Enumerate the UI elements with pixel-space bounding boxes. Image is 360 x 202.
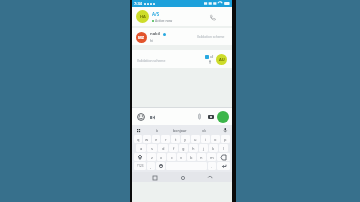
button[interactable]: Validation scheme xyxy=(132,50,232,68)
button[interactable]: Call xyxy=(206,11,218,23)
button[interactable]: n xyxy=(197,153,206,161)
button[interactable]: , xyxy=(147,162,155,170)
button[interactable]: y xyxy=(181,135,190,143)
button[interactable]: b xyxy=(187,153,196,161)
staticText: ok xyxy=(202,128,207,133)
staticText: j xyxy=(203,146,205,151)
button[interactable]: Emoji xyxy=(135,111,146,122)
button[interactable]: o xyxy=(211,135,220,143)
button[interactable]: Recents xyxy=(150,173,159,182)
button[interactable]: Shift xyxy=(134,153,146,161)
staticText: d xyxy=(162,146,165,151)
button[interactable]: l xyxy=(219,144,228,152)
staticText: s xyxy=(151,146,153,151)
staticText: i xyxy=(205,137,207,142)
button[interactable]: z xyxy=(147,153,156,161)
button[interactable]: s xyxy=(147,144,157,152)
staticText: n xyxy=(200,155,203,160)
staticText: hi xyxy=(150,38,153,43)
staticText: t xyxy=(175,137,177,142)
button[interactable]: p xyxy=(221,135,230,143)
staticText: x xyxy=(160,155,163,160)
button[interactable]: u xyxy=(191,135,200,143)
staticText: . xyxy=(211,164,213,169)
button[interactable]: m xyxy=(207,153,216,161)
staticText: v xyxy=(180,155,183,160)
button[interactable]: g xyxy=(179,144,188,152)
button[interactable]: e xyxy=(152,135,160,143)
staticText: bonjour xyxy=(173,128,187,133)
button[interactable]: d xyxy=(158,144,168,152)
staticText: a xyxy=(140,146,143,151)
button[interactable]: r xyxy=(161,135,170,143)
staticText: m xyxy=(210,155,214,160)
button[interactable]: j xyxy=(199,144,208,152)
button[interactable]: q xyxy=(134,135,142,143)
staticText: f xyxy=(173,146,175,151)
button[interactable]: Enter xyxy=(217,162,230,170)
staticText: Validation scheme xyxy=(197,35,225,39)
staticText: Active now xyxy=(155,18,173,23)
staticText: 7:34 xyxy=(134,1,142,6)
staticText: y xyxy=(184,137,187,142)
button[interactable]: w xyxy=(143,135,151,143)
button[interactable]: Back xyxy=(205,173,214,182)
button[interactable]: HA xyxy=(132,7,232,26)
button[interactable]: Backspace xyxy=(217,153,230,161)
button[interactable]: i xyxy=(201,135,210,143)
staticText: e xyxy=(155,137,158,142)
staticText: ?123 xyxy=(137,164,144,168)
staticText: HA xyxy=(140,14,146,19)
staticText: l xyxy=(223,146,225,151)
staticText: AU xyxy=(219,57,225,62)
button[interactable]: k xyxy=(209,144,218,152)
staticText: nabil xyxy=(150,31,161,37)
button[interactable]: ?123 xyxy=(134,162,146,170)
staticText: z xyxy=(151,155,153,160)
button[interactable]: Send voice message xyxy=(217,111,229,123)
button[interactable]: Home xyxy=(178,173,187,182)
button[interactable]: . xyxy=(208,162,216,170)
staticText: h xyxy=(192,146,195,151)
staticText: b xyxy=(156,128,159,133)
button[interactable]: MZ xyxy=(132,28,232,45)
button[interactable]: t xyxy=(171,135,180,143)
button[interactable]: x xyxy=(157,153,166,161)
button[interactable]: Keyboard options xyxy=(135,127,142,134)
staticText: u xyxy=(194,137,197,142)
button[interactable]: Attach xyxy=(195,112,204,121)
button[interactable]: a xyxy=(136,144,146,152)
staticText: p xyxy=(224,137,227,142)
button[interactable]: c xyxy=(167,153,176,161)
staticText: MZ xyxy=(138,35,145,40)
staticText: q xyxy=(137,137,140,142)
staticText: k xyxy=(212,146,215,151)
staticText: c xyxy=(171,155,173,160)
staticText: A/S xyxy=(152,11,160,17)
button[interactable]: Camera xyxy=(206,112,215,121)
button[interactable]: v xyxy=(177,153,186,161)
staticText: r xyxy=(165,137,167,142)
button[interactable]: Emoji xyxy=(156,162,165,170)
button[interactable]: f xyxy=(169,144,178,152)
staticText: Validation scheme xyxy=(137,58,166,62)
staticText: w xyxy=(145,137,149,142)
button[interactable]: Sticker xyxy=(148,113,156,121)
staticText: all xyxy=(210,55,214,59)
button[interactable]: h xyxy=(189,144,198,152)
button[interactable]: Voice input xyxy=(222,127,229,134)
staticText: b xyxy=(190,155,193,160)
staticText: , xyxy=(150,164,152,169)
staticText: o xyxy=(214,137,217,142)
staticText: g xyxy=(182,146,185,151)
